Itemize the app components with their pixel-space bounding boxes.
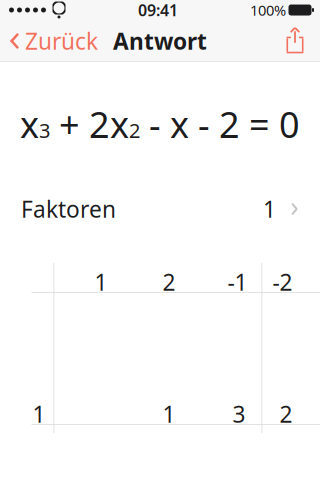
staticText: 1 [162, 399, 175, 429]
staticText: 09:41 [138, 0, 178, 21]
staticText: 2 [279, 399, 292, 429]
staticText: 2 [129, 117, 140, 143]
staticText: 1 [32, 399, 45, 429]
staticText: x [110, 100, 129, 148]
button[interactable]: Teilen [282, 21, 320, 61]
staticText: -2 [272, 267, 292, 297]
staticText: 2 [162, 267, 175, 297]
staticText: 1 [94, 267, 107, 297]
staticText: Zurück [25, 26, 98, 56]
staticText: 100% [250, 0, 286, 20]
staticText: 3 [232, 399, 245, 429]
staticText: Antwort [113, 26, 207, 56]
staticText: 1 [263, 194, 276, 224]
staticText: 3 [39, 117, 50, 143]
staticText: Faktoren [21, 194, 116, 224]
staticText: - x - 2 = 0 [140, 100, 300, 148]
staticText: x [20, 100, 39, 148]
staticText: -1 [227, 267, 247, 297]
button[interactable]: Faktoren [0, 194, 320, 224]
staticText: + 2 [50, 100, 110, 148]
button[interactable]: Zurück [0, 18, 98, 64]
